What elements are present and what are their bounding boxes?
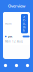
button[interactable]: Explore — [11, 59, 22, 72]
staticText: LHR — [8, 35, 13, 38]
staticText: Search — [23, 15, 26, 32]
staticText: Mon 12 Aug — [5, 40, 23, 43]
button[interactable]: Profile — [22, 59, 33, 72]
button[interactable]: Search — [21, 14, 28, 33]
staticText: From — [5, 22, 11, 25]
staticText: Overview — [8, 3, 25, 9]
button[interactable]: Home — [0, 59, 11, 72]
